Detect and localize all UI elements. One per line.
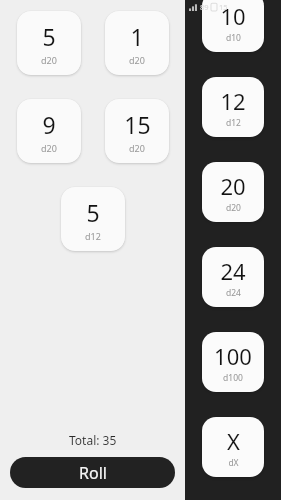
button[interactable]: 20 (202, 162, 264, 222)
button[interactable]: Roll (10, 457, 175, 488)
staticText: d100 (223, 372, 243, 384)
button[interactable]: 100 (202, 332, 264, 392)
button[interactable]: 15 (105, 99, 169, 163)
staticText: 20 (220, 171, 246, 201)
staticText: 15 (219, 2, 228, 12)
staticText: d20 (41, 142, 57, 154)
staticText: d12 (226, 117, 241, 129)
staticText: 10 (220, 1, 246, 31)
staticText: Roll (79, 462, 107, 484)
staticText: d24 (226, 287, 241, 299)
staticText: d20 (129, 54, 145, 66)
button[interactable]: 1 (105, 11, 169, 75)
staticText: 5 (42, 21, 56, 52)
staticText: 89 (200, 2, 209, 12)
staticText: d12 (85, 230, 101, 242)
staticText: 9 (42, 109, 56, 140)
button[interactable]: X (202, 417, 264, 477)
button[interactable]: 12 (202, 77, 264, 137)
staticText: 100 (214, 341, 252, 371)
staticText: dX (228, 457, 239, 469)
staticText: 24 (220, 256, 246, 286)
other: Status bar (185, 0, 281, 13)
staticText: d20 (41, 54, 57, 66)
button[interactable]: 5 (17, 11, 81, 75)
staticText: d20 (129, 142, 145, 154)
staticText: 1 (130, 21, 144, 52)
staticText: d20 (226, 202, 241, 214)
staticText: X (227, 426, 240, 456)
staticText: Total: 35 (69, 432, 117, 448)
button[interactable]: 5 (61, 187, 125, 251)
staticText: 15 (124, 109, 151, 140)
button[interactable]: 9 (17, 99, 81, 163)
button[interactable]: 24 (202, 247, 264, 307)
button[interactable]: 10 (202, 0, 264, 52)
staticText: 12 (220, 86, 246, 116)
staticText: 5 (86, 197, 100, 228)
staticText: d10 (226, 32, 241, 44)
